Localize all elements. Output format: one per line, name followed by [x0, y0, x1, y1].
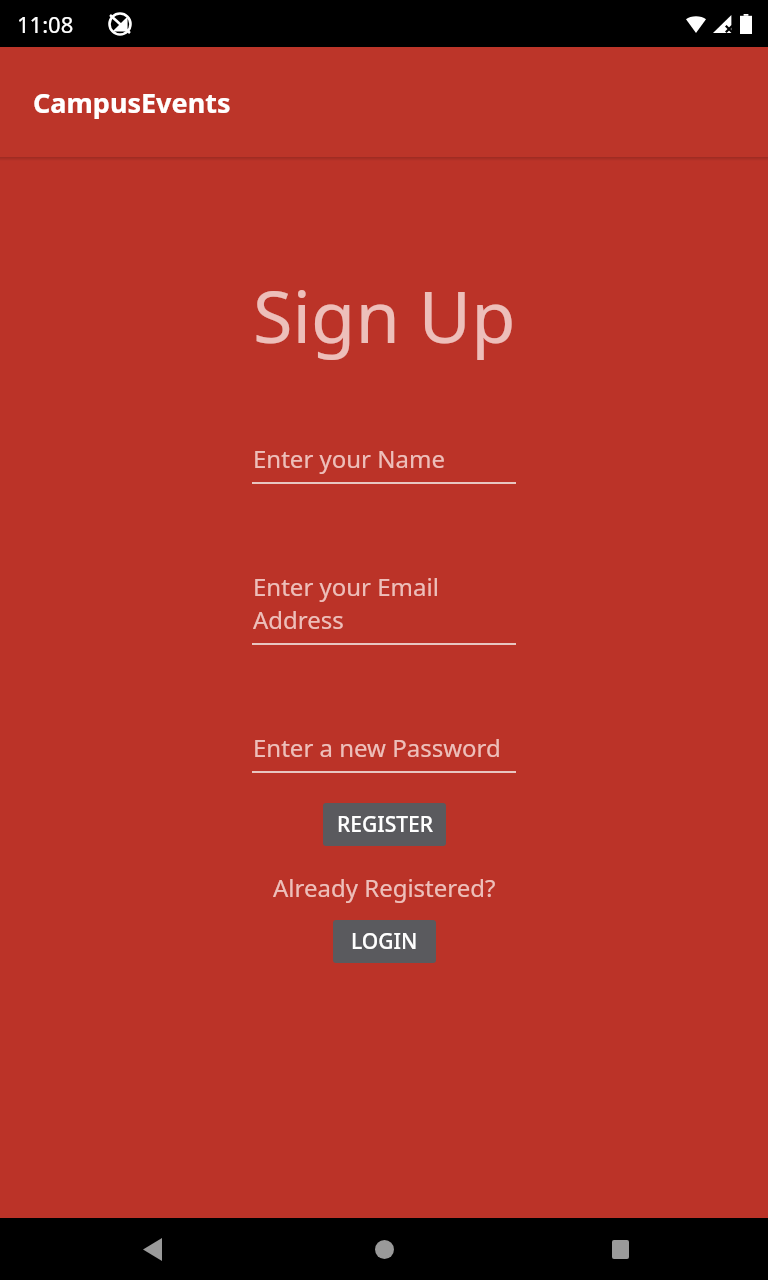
button[interactable]: REGISTER: [323, 803, 446, 846]
button[interactable]: Enter your Email Address: [252, 570, 516, 645]
staticText: Sign Up: [253, 266, 516, 364]
button[interactable]: LOGIN: [333, 920, 436, 963]
button[interactable]: Enter a new Password: [252, 731, 516, 773]
button[interactable]: Recent apps: [596, 1225, 644, 1273]
staticText: Enter your Email Address: [253, 570, 516, 636]
button[interactable]: Home: [360, 1225, 408, 1273]
staticText: 11:08: [17, 9, 74, 39]
staticText: REGISTER: [337, 810, 433, 839]
staticText: Already Registered?: [273, 871, 496, 904]
staticText: Enter a new Password: [253, 731, 501, 764]
button[interactable]: Back: [128, 1225, 176, 1273]
staticText: LOGIN: [351, 927, 418, 956]
staticText: Enter your Name: [253, 442, 445, 475]
staticText: CampusEvents: [33, 84, 231, 121]
button[interactable]: Enter your Name: [252, 442, 516, 484]
